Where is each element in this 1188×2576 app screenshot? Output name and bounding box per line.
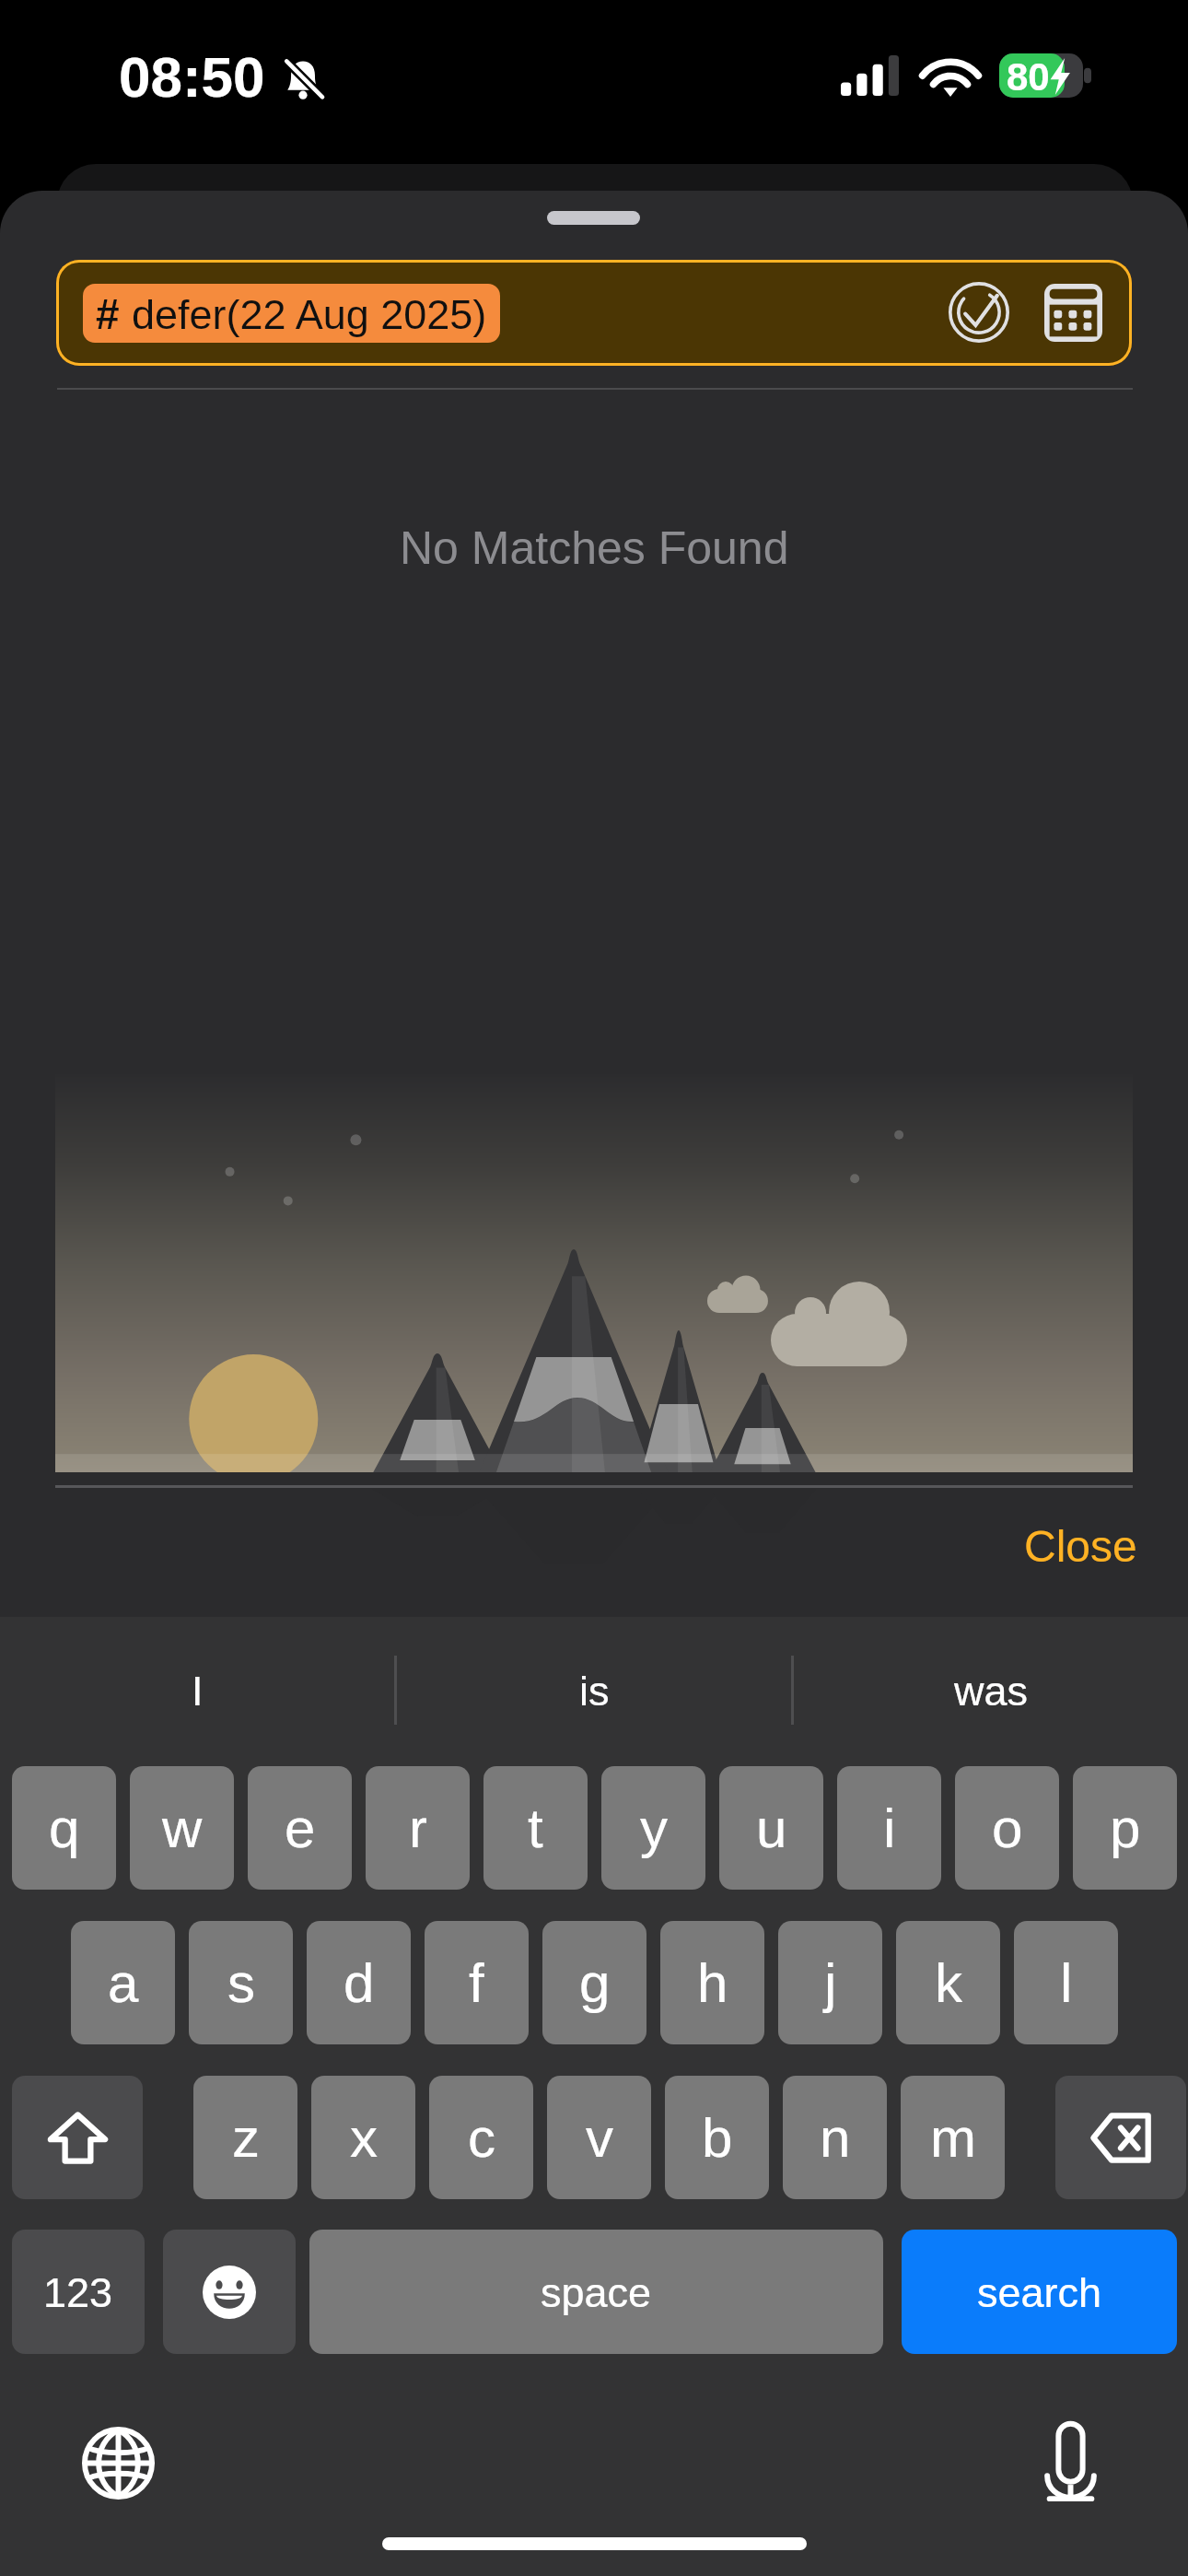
- button[interactable]: search: [902, 2230, 1177, 2354]
- button[interactable]: k: [896, 1921, 1000, 2044]
- staticText: b: [702, 2107, 733, 2169]
- staticText: f: [469, 1952, 484, 2014]
- staticText: #: [96, 290, 120, 337]
- button[interactable]: Change keyboard: [82, 2427, 155, 2500]
- staticText: c: [468, 2107, 495, 2169]
- button[interactable]: f: [425, 1921, 529, 2044]
- button[interactable]: z: [193, 2076, 297, 2199]
- button[interactable]: a: [71, 1921, 175, 2044]
- staticText: e: [285, 1797, 316, 1859]
- staticText: was: [954, 1668, 1029, 1714]
- button[interactable]: r: [366, 1766, 470, 1890]
- button[interactable]: m: [901, 2076, 1005, 2199]
- button[interactable]: i: [837, 1766, 941, 1890]
- staticText: No Matches Found: [400, 522, 789, 574]
- button[interactable]: Emoji: [163, 2230, 296, 2354]
- staticText: search: [977, 2269, 1102, 2315]
- staticText: defer(22 Aug 2025): [132, 291, 487, 337]
- button[interactable]: o: [955, 1766, 1059, 1890]
- staticText: v: [586, 2107, 613, 2169]
- staticText: 08:50: [119, 45, 265, 109]
- button[interactable]: Close: [1007, 1511, 1154, 1583]
- button[interactable]: y: [601, 1766, 705, 1890]
- button[interactable]: u: [719, 1766, 823, 1890]
- button[interactable]: I: [0, 1635, 394, 1745]
- button[interactable]: t: [483, 1766, 588, 1890]
- button[interactable]: q: [12, 1766, 116, 1890]
- button[interactable]: Shift: [12, 2076, 143, 2199]
- staticText: 80: [1007, 55, 1050, 99]
- staticText: m: [930, 2107, 976, 2169]
- staticText: y: [640, 1797, 668, 1859]
- staticText: u: [756, 1797, 787, 1859]
- staticText: i: [883, 1797, 896, 1859]
- staticText: h: [697, 1952, 728, 2014]
- button[interactable]: h: [660, 1921, 764, 2044]
- button[interactable]: c: [429, 2076, 533, 2199]
- button[interactable]: e: [248, 1766, 352, 1890]
- staticText: Close: [1024, 1522, 1137, 1572]
- button[interactable]: #: [56, 260, 1132, 366]
- button[interactable]: Calendar: [1031, 268, 1114, 357]
- button[interactable]: b: [665, 2076, 769, 2199]
- button[interactable]: d: [307, 1921, 411, 2044]
- button[interactable]: was: [794, 1635, 1188, 1745]
- staticText: 123: [43, 2269, 113, 2315]
- staticText: x: [350, 2107, 378, 2169]
- staticText: w: [162, 1797, 203, 1859]
- staticText: space: [541, 2269, 652, 2315]
- staticText: d: [344, 1952, 375, 2014]
- button[interactable]: s: [189, 1921, 293, 2044]
- button[interactable]: n: [783, 2076, 887, 2199]
- button[interactable]: w: [130, 1766, 234, 1890]
- staticText: z: [232, 2107, 260, 2169]
- button[interactable]: x: [311, 2076, 415, 2199]
- button[interactable]: Backspace: [1055, 2076, 1186, 2199]
- button[interactable]: 123: [12, 2230, 145, 2354]
- staticText: is: [579, 1668, 610, 1714]
- staticText: s: [227, 1952, 255, 2014]
- staticText: o: [992, 1797, 1023, 1859]
- staticText: I: [192, 1668, 204, 1714]
- button[interactable]: v: [547, 2076, 651, 2199]
- button[interactable]: j: [778, 1921, 882, 2044]
- button[interactable]: g: [542, 1921, 646, 2044]
- staticText: n: [820, 2107, 851, 2169]
- staticText: g: [579, 1952, 611, 2014]
- staticText: r: [409, 1797, 427, 1859]
- staticText: q: [49, 1797, 80, 1859]
- button[interactable]: space: [309, 2230, 883, 2354]
- button[interactable]: p: [1073, 1766, 1177, 1890]
- staticText: l: [1060, 1952, 1073, 2014]
- button[interactable]: is: [397, 1635, 791, 1745]
- button[interactable]: l: [1014, 1921, 1118, 2044]
- staticText: t: [528, 1797, 543, 1859]
- button[interactable]: Dictate: [1044, 2423, 1097, 2502]
- button[interactable]: Mark complete: [938, 268, 1020, 357]
- staticText: a: [108, 1952, 139, 2014]
- staticText: k: [935, 1952, 962, 2014]
- staticText: j: [824, 1952, 837, 2014]
- staticText: p: [1110, 1797, 1141, 1859]
